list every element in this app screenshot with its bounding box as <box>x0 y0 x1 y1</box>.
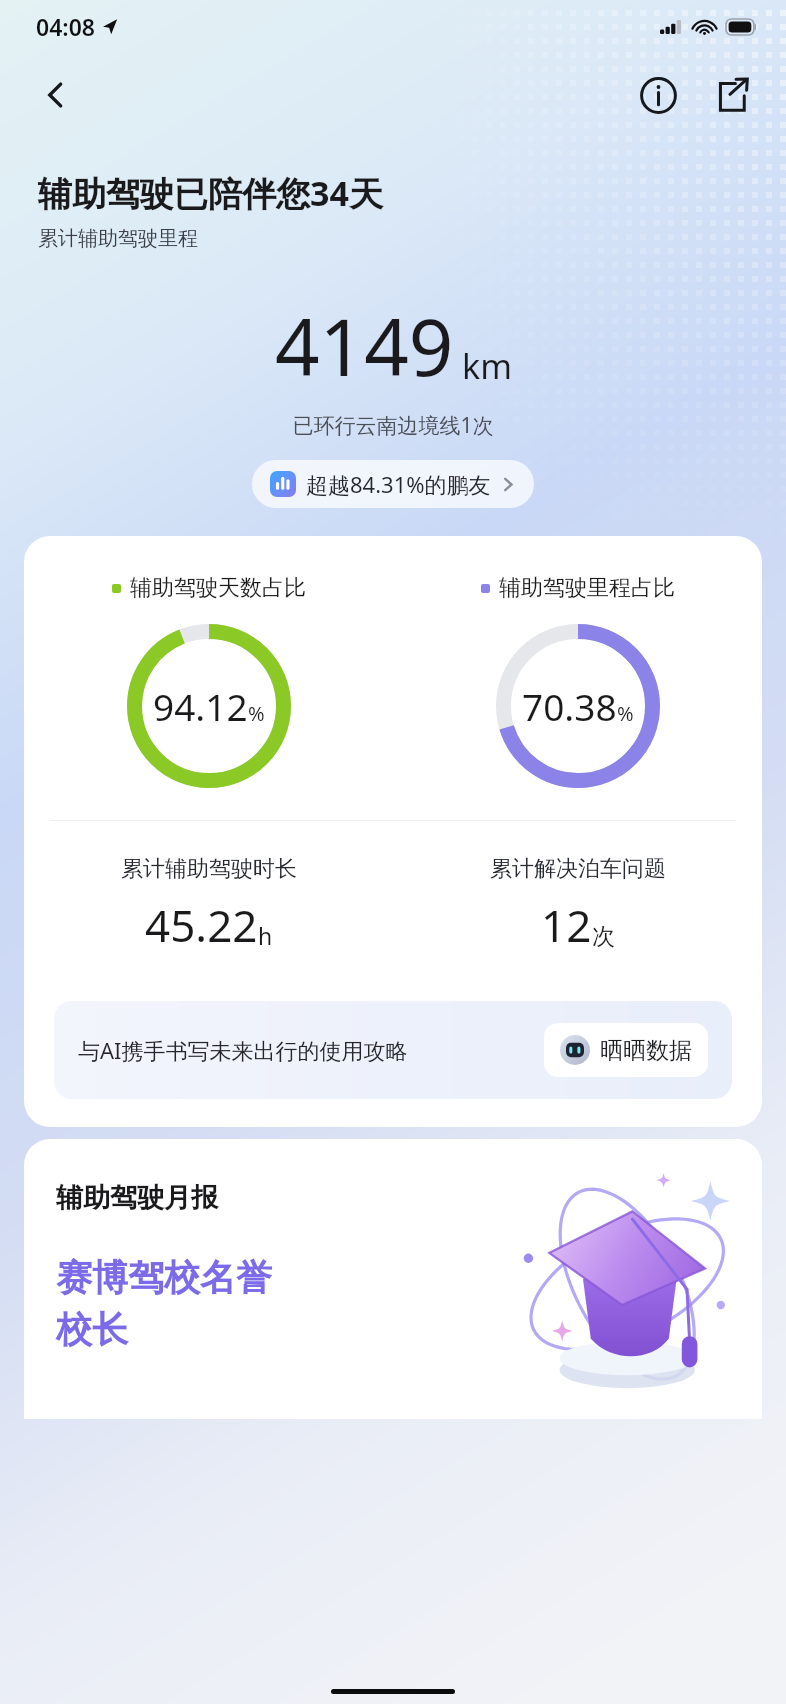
staticText: 累计辅助驾驶时长 <box>121 855 297 883</box>
staticText: 辅助驾驶里程占比 <box>499 574 675 602</box>
staticText: 12 <box>541 895 592 955</box>
staticText: 70.38 <box>522 681 617 731</box>
staticText: 晒晒数据 <box>600 1036 692 1065</box>
staticText: 赛博驾校名誉 校长 <box>56 1255 272 1353</box>
button[interactable]: Info <box>630 67 686 123</box>
button[interactable]: Share <box>704 67 760 123</box>
button[interactable]: 超越84.31%的鹏友 <box>252 460 534 508</box>
staticText: h <box>258 920 273 951</box>
staticText: 已环行云南边境线1次 <box>0 411 786 440</box>
staticText: % <box>617 700 634 727</box>
staticText: 45.22 <box>145 895 258 955</box>
staticText: 辅助驾驶已陪伴您34天 <box>38 170 383 216</box>
staticText: 04:08 <box>36 11 95 42</box>
staticText: % <box>248 700 265 727</box>
staticText: 94.12 <box>153 681 248 731</box>
staticText: 与AI携手书写未来出行的使用攻略 <box>78 1035 530 1065</box>
staticText: 次 <box>592 922 615 951</box>
staticText: 辅助驾驶天数占比 <box>130 574 306 602</box>
staticText: km <box>462 343 512 389</box>
staticText: 超越84.31%的鹏友 <box>306 469 491 499</box>
button[interactable]: Back <box>28 67 84 123</box>
staticText: 4149 <box>275 293 454 399</box>
staticText: 辅助驾驶月报 <box>56 1181 218 1215</box>
staticText: 累计解决泊车问题 <box>490 855 666 883</box>
staticText: 累计辅助驾驶里程 <box>38 226 198 251</box>
button[interactable]: 晒晒数据 <box>544 1023 708 1077</box>
